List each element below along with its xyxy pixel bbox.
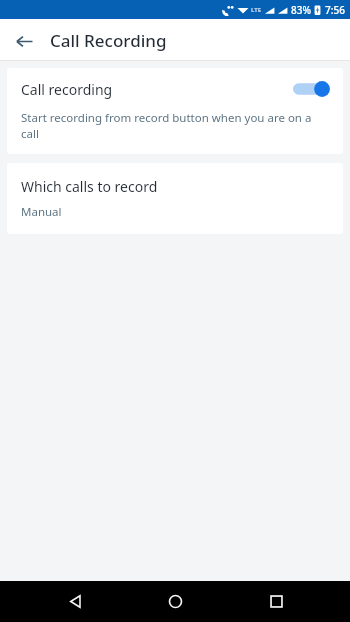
button[interactable]: Recent apps <box>250 581 302 622</box>
staticText: Which calls to record <box>21 177 158 196</box>
button[interactable]: Home <box>149 581 201 622</box>
button[interactable]: Which calls to record <box>7 163 343 234</box>
button[interactable]: Call recording <box>7 68 343 154</box>
staticText: Call recording <box>21 80 293 99</box>
staticText: Call Recording <box>50 29 167 52</box>
button[interactable]: Back <box>6 23 42 59</box>
button[interactable]: Call recording toggle <box>293 77 329 101</box>
staticText: LTE <box>251 6 262 14</box>
button[interactable]: Back <box>49 581 101 622</box>
staticText: 7:56 <box>325 3 345 17</box>
staticText: 83% <box>291 3 311 17</box>
staticText: Start recording from record button when … <box>21 110 329 142</box>
staticText: Manual <box>21 204 62 220</box>
